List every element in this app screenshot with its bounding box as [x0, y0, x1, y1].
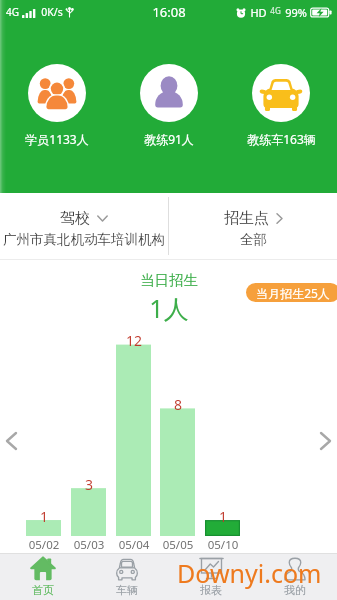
staticText: 99%: [285, 5, 307, 20]
button[interactable]: 学员1133人: [0, 64, 113, 147]
staticText: 05/03: [67, 537, 111, 553]
staticText: 16:08: [152, 3, 186, 21]
staticText: 车辆: [116, 583, 138, 597]
staticText: 1: [203, 507, 243, 526]
staticText: 当日招生: [140, 271, 198, 289]
staticText: 首页: [32, 583, 54, 597]
staticText: 当月招生25人: [256, 285, 330, 301]
staticText: 学员1133人: [25, 131, 89, 147]
staticText: 3: [69, 475, 109, 494]
button[interactable]: 我的: [253, 553, 337, 600]
button[interactable]: 车辆: [85, 553, 169, 600]
staticText: 05/10: [201, 537, 245, 553]
staticText: 05/04: [112, 537, 156, 553]
staticText: 我的: [284, 583, 306, 597]
staticText: 12: [114, 331, 154, 350]
button[interactable]: 驾校: [0, 193, 168, 259]
button[interactable]: 首页: [0, 553, 85, 600]
button[interactable]: 教练车163辆: [225, 64, 337, 147]
button[interactable]: 教练91人: [113, 64, 225, 147]
button[interactable]: 招生点: [169, 193, 337, 259]
staticText: 全部: [240, 231, 267, 248]
staticText: 05/02: [22, 537, 66, 553]
staticText: 8: [158, 395, 198, 414]
staticText: 教练车163辆: [247, 131, 316, 147]
staticText: 4G: [6, 5, 19, 19]
staticText: 0K/s: [41, 5, 63, 19]
staticText: 报表: [200, 583, 222, 597]
staticText: 1: [24, 507, 64, 526]
button[interactable]: Next: [314, 430, 336, 452]
staticText: 教练91人: [144, 131, 194, 147]
button[interactable]: Previous: [0, 430, 22, 452]
staticText: 1人: [149, 291, 189, 325]
staticText: 驾校: [60, 209, 90, 228]
staticText: Downyi.com: [177, 556, 322, 590]
staticText: 招生点: [224, 209, 269, 228]
staticText: 4G: [270, 5, 281, 16]
button[interactable]: 当月招生25人: [246, 283, 337, 302]
staticText: 05/05: [156, 537, 200, 553]
button[interactable]: 报表: [169, 553, 253, 600]
staticText: HD: [250, 5, 267, 20]
staticText: 广州市真北机动车培训机构: [3, 231, 165, 248]
